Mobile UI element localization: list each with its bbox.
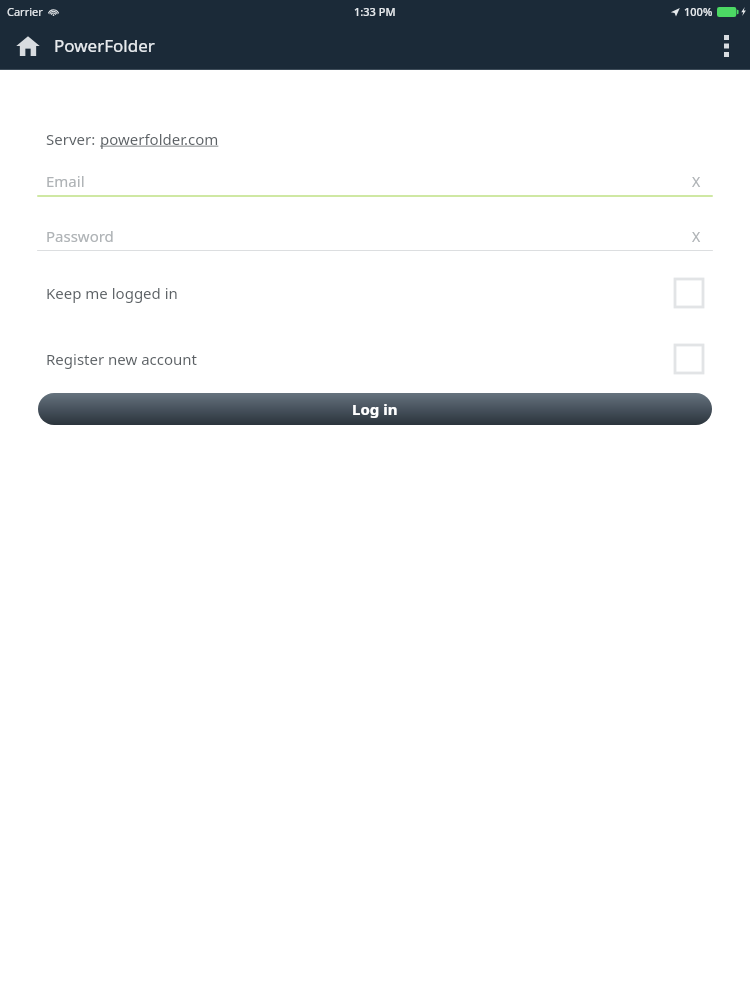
- button[interactable]: Keep me logged in: [46, 278, 703, 308]
- staticText: 1:33 PM: [354, 4, 396, 19]
- staticText: X: [692, 227, 701, 246]
- button[interactable]: Register new account: [46, 344, 703, 374]
- button[interactable]: Server:: [46, 129, 219, 149]
- button[interactable]: PowerFolder: [16, 34, 155, 57]
- staticText: Register new account: [46, 349, 198, 369]
- staticText: 100%: [684, 4, 713, 19]
- button[interactable]: Clear Email: [686, 171, 706, 191]
- staticText: Log in: [352, 399, 398, 419]
- staticText: Email: [46, 171, 85, 191]
- button[interactable]: Clear Password: [686, 226, 706, 246]
- staticText: powerfolder.com: [100, 129, 219, 149]
- staticText: Server:: [46, 129, 100, 149]
- staticText: X: [692, 172, 701, 191]
- button[interactable]: More options: [702, 22, 750, 69]
- staticText: PowerFolder: [54, 34, 155, 57]
- button[interactable]: Email: [37, 167, 713, 197]
- button[interactable]: Password: [37, 222, 713, 251]
- staticText: Carrier: [7, 4, 43, 19]
- staticText: Password: [46, 226, 114, 246]
- button[interactable]: Log in: [38, 393, 712, 425]
- staticText: Keep me logged in: [46, 283, 178, 303]
